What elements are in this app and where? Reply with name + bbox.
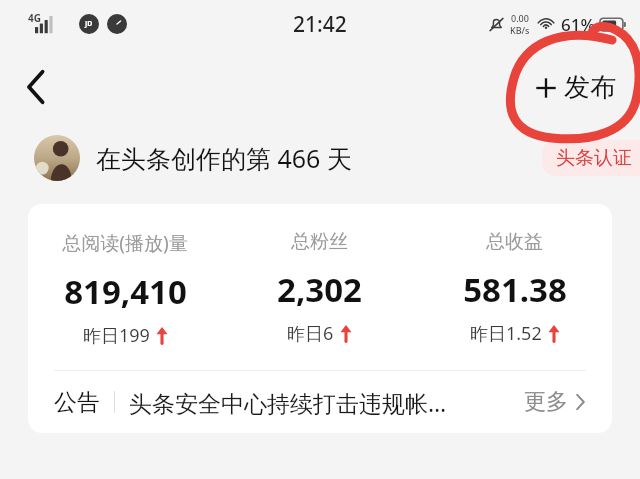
staticText: 0.00 [511, 12, 529, 24]
staticText: 头条安全中心持续打击违规帐… [129, 387, 447, 418]
staticText: 昨日6 [287, 321, 334, 346]
button[interactable]: 头条认证 [542, 140, 640, 176]
button[interactable]: 总阅读(播放)量 [28, 230, 222, 348]
button[interactable]: 公告 [28, 371, 612, 433]
staticText: 发布 [564, 71, 616, 104]
staticText: 总阅读(播放)量 [62, 230, 188, 256]
staticText: 更多 [524, 388, 568, 416]
staticText: 总收益 [486, 230, 543, 254]
staticText: 在头条创作的第 466 天 [96, 141, 352, 175]
staticText: 总粉丝 [291, 230, 348, 254]
staticText: 头条认证 [556, 146, 632, 170]
staticText: 昨日199 [83, 323, 150, 348]
button[interactable]: 在头条创作的第 466 天 [34, 135, 352, 181]
button[interactable]: 发布 [529, 65, 622, 110]
staticText: 4G [28, 11, 41, 25]
staticText: 819,410 [64, 269, 187, 314]
staticText: KB/s [510, 24, 530, 36]
staticText: 2,302 [277, 267, 362, 312]
staticText: JD [85, 19, 93, 29]
staticText: 61% [561, 13, 595, 36]
staticText: 21:42 [293, 10, 347, 39]
button[interactable]: 总粉丝 [222, 230, 417, 346]
button[interactable]: Back [10, 61, 62, 113]
staticText: 公告 [54, 388, 100, 417]
staticText: 昨日1.52 [470, 321, 542, 346]
staticText: 581.38 [463, 267, 567, 312]
button[interactable]: 总收益 [417, 230, 612, 346]
